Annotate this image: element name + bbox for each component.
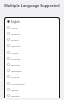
button[interactable]: Arabic (5, 49, 59, 55)
button[interactable]: Bengali (5, 92, 59, 98)
staticText: Chinese (11, 57, 21, 60)
staticText: Japanese (11, 69, 22, 72)
button[interactable]: English (5, 18, 59, 24)
button[interactable]: German (5, 42, 59, 49)
staticText: Bengali (11, 94, 20, 97)
staticText: Spanish (11, 32, 21, 35)
staticText: Arabic (11, 51, 19, 54)
staticText: French (11, 38, 19, 41)
staticText: Hindi (11, 26, 18, 29)
staticText: English (11, 20, 20, 23)
button[interactable]: French (5, 36, 59, 42)
staticText: Portuguese (11, 82, 25, 85)
button[interactable]: Chinese (5, 55, 59, 61)
button[interactable]: Hindi (5, 24, 59, 30)
button[interactable]: Portuguese (5, 80, 59, 86)
staticText: Korean (11, 75, 20, 78)
button[interactable]: Italian (5, 86, 59, 92)
button[interactable]: Russian (5, 61, 59, 67)
button[interactable]: Japanese (5, 67, 59, 73)
staticText: Russian (11, 63, 21, 66)
button[interactable]: Spanish (5, 30, 59, 36)
staticText: Italian (11, 88, 19, 91)
staticText: German (11, 44, 21, 47)
button[interactable]: Korean (5, 73, 59, 80)
staticText: Multiple Language Supported (4, 3, 60, 8)
